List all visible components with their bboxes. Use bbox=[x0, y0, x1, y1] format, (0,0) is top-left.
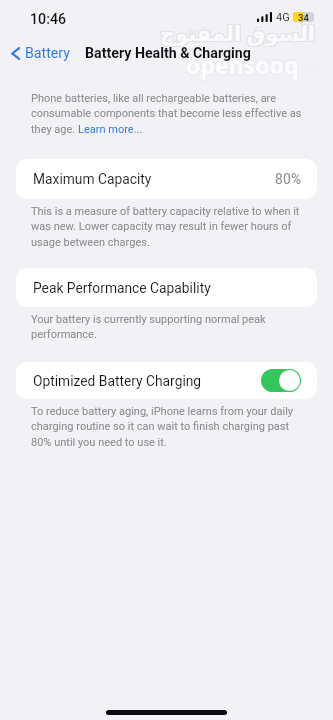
staticText: Battery bbox=[25, 45, 71, 62]
other: Battery 34 percent bbox=[293, 12, 314, 22]
staticText: 34 bbox=[298, 12, 309, 22]
staticText: opensooq bbox=[187, 48, 300, 79]
staticText: opensooq bbox=[187, 50, 300, 81]
staticText: Your battery is currently supporting nor… bbox=[31, 313, 266, 341]
staticText: This is a measure of battery capacity re… bbox=[31, 205, 300, 249]
staticText: Peak Performance Capability bbox=[33, 280, 211, 296]
staticText: opensooq bbox=[185, 48, 298, 79]
button[interactable]: Optimized Battery Charging bbox=[16, 362, 317, 399]
button[interactable]: Peak Performance Capability bbox=[16, 268, 317, 307]
staticText: opensooq bbox=[186, 50, 299, 81]
staticText: 4G bbox=[276, 11, 290, 24]
staticText: 80% bbox=[275, 171, 302, 187]
staticText: السوق المفتوح bbox=[160, 19, 316, 48]
staticText: السوق المفتوح bbox=[160, 18, 316, 47]
staticText: السوق المفتوح bbox=[159, 19, 315, 48]
staticText: السوق المفتوح bbox=[159, 20, 315, 49]
staticText: السوق المفتوح bbox=[160, 20, 316, 49]
other: Cellular signal bbox=[257, 12, 272, 22]
staticText: Battery Health & Charging bbox=[85, 45, 251, 62]
staticText: السوق المفتوح bbox=[161, 19, 317, 48]
staticText: 10:46 bbox=[30, 11, 67, 28]
staticText: السوق المفتوح bbox=[159, 18, 315, 47]
button[interactable]: Optimized Battery Charging toggle bbox=[261, 369, 301, 392]
staticText: Maximum Capacity bbox=[33, 171, 152, 187]
staticText: Optimized Battery Charging bbox=[33, 373, 202, 389]
staticText: السوق المفتوح bbox=[161, 18, 317, 47]
staticText: opensooq bbox=[187, 49, 300, 80]
staticText: Phone batteries, like all rechargeable b… bbox=[31, 92, 302, 136]
button[interactable]: Back bbox=[11, 45, 71, 62]
staticText: opensooq bbox=[185, 50, 298, 81]
staticText: opensooq bbox=[186, 49, 299, 80]
staticText: opensooq bbox=[185, 49, 298, 80]
staticText: To reduce battery aging, iPhone learns f… bbox=[31, 405, 294, 449]
staticText: opensooq bbox=[186, 48, 299, 79]
button[interactable]: Maximum Capacity bbox=[16, 159, 317, 199]
staticText: السوق المفتوح bbox=[161, 20, 317, 49]
other: Back bbox=[11, 47, 20, 60]
